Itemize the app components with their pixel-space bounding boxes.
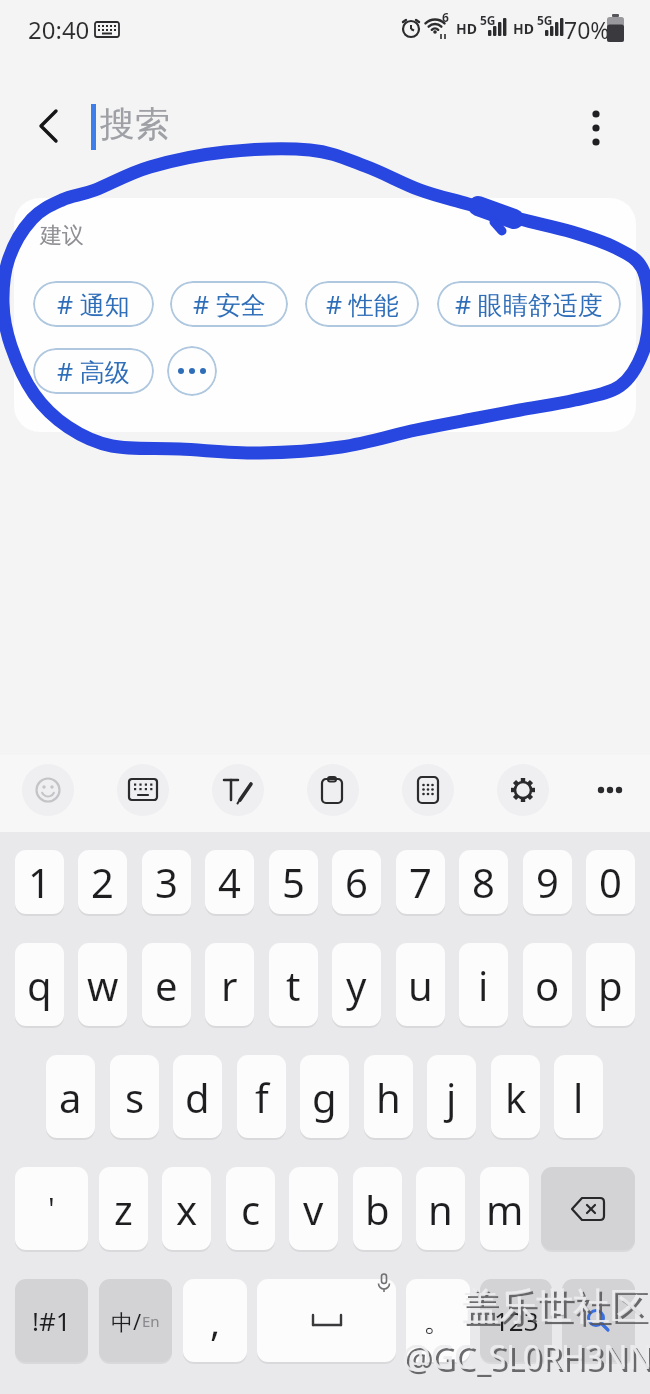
button[interactable]: 中/ [99, 1279, 172, 1362]
staticText: f [255, 1070, 269, 1124]
button[interactable]: !#1 [15, 1279, 88, 1362]
button[interactable]: 。 [406, 1279, 470, 1362]
staticText: # 安全 [193, 287, 266, 321]
staticText: o [535, 958, 560, 1012]
button[interactable]: u [396, 943, 445, 1026]
button[interactable]: ' [15, 1167, 88, 1250]
button[interactable]: j [427, 1055, 476, 1138]
button[interactable] [26, 102, 72, 148]
staticText: HD [456, 19, 477, 38]
staticText: 。 [423, 1302, 453, 1340]
button[interactable]: i [459, 943, 508, 1026]
button[interactable]: r [205, 943, 254, 1026]
staticText: y [346, 958, 367, 1012]
staticText: b [365, 1182, 390, 1236]
button[interactable]: 0 [586, 850, 635, 914]
staticText: e [155, 958, 178, 1012]
button[interactable]: 7 [396, 850, 445, 914]
button[interactable]: d [173, 1055, 222, 1138]
button[interactable]: 8 [459, 850, 508, 914]
staticText: 3 [155, 855, 178, 909]
staticText: 0 [599, 855, 622, 909]
button[interactable]: y [332, 943, 381, 1026]
button[interactable]: , [183, 1279, 247, 1362]
button[interactable]: e [142, 943, 191, 1026]
staticText: a [59, 1070, 82, 1124]
button[interactable]: o [523, 943, 572, 1026]
staticText: 8 [472, 855, 495, 909]
staticText: p [598, 958, 623, 1012]
button[interactable]: b [353, 1167, 402, 1250]
staticText: i [478, 958, 489, 1012]
button[interactable]: c [226, 1167, 275, 1250]
button[interactable]: x [162, 1167, 211, 1250]
button[interactable]: # 高级 [33, 348, 154, 394]
staticText: # 高级 [57, 354, 130, 388]
staticText: 盖乐世社区 [462, 1283, 647, 1330]
button[interactable]: t [269, 943, 318, 1026]
staticText: 5 [282, 855, 305, 909]
button[interactable] [117, 764, 169, 816]
staticText: l [573, 1070, 584, 1124]
button[interactable]: l [554, 1055, 603, 1138]
staticText: HD [513, 19, 534, 38]
button[interactable]: 1 [15, 850, 64, 914]
button[interactable]: m [480, 1167, 529, 1250]
button[interactable]: w [78, 943, 127, 1026]
staticText: 6 [442, 9, 449, 25]
button[interactable]: a [46, 1055, 95, 1138]
button[interactable] [257, 1279, 396, 1362]
button[interactable]: # 通知 [33, 281, 154, 327]
staticText: 123 [494, 1303, 539, 1338]
button[interactable]: q [15, 943, 64, 1026]
staticText: 7 [409, 855, 432, 909]
staticText: , [210, 1295, 221, 1347]
staticText: k [505, 1070, 527, 1124]
staticText: # 通知 [57, 287, 130, 321]
button[interactable] [588, 772, 632, 808]
button[interactable]: k [491, 1055, 540, 1138]
button[interactable] [562, 1279, 635, 1362]
staticText: 9 [536, 855, 559, 909]
button[interactable]: # 眼睛舒适度 [437, 281, 621, 327]
button[interactable]: 4 [205, 850, 254, 914]
button[interactable]: 6 [332, 850, 381, 914]
button[interactable]: z [99, 1167, 148, 1250]
button[interactable]: h [364, 1055, 413, 1138]
button[interactable]: n [416, 1167, 465, 1250]
staticText: En [142, 1311, 160, 1331]
button[interactable] [541, 1167, 635, 1250]
button[interactable] [307, 764, 359, 816]
button[interactable]: 9 [523, 850, 572, 914]
staticText: g [312, 1070, 337, 1124]
staticText: z [114, 1182, 133, 1236]
button[interactable] [574, 102, 618, 148]
button[interactable]: 3 [142, 850, 191, 914]
button[interactable] [167, 346, 217, 396]
staticText: 4 [218, 855, 241, 909]
staticText: n [428, 1182, 453, 1236]
button[interactable]: f [237, 1055, 286, 1138]
staticText: c [241, 1182, 261, 1236]
staticText: x [176, 1182, 198, 1236]
staticText: # 眼睛舒适度 [455, 287, 603, 321]
button[interactable] [22, 764, 74, 816]
staticText: 搜索 [100, 102, 170, 146]
button[interactable]: v [289, 1167, 338, 1250]
button[interactable]: s [110, 1055, 159, 1138]
button[interactable] [497, 764, 549, 816]
button[interactable] [212, 764, 264, 816]
button[interactable]: # 性能 [305, 281, 419, 327]
button[interactable]: g [300, 1055, 349, 1138]
button[interactable]: 123 [480, 1279, 552, 1362]
button[interactable] [402, 764, 454, 816]
staticText: 建议 [40, 222, 84, 250]
staticText: 1 [28, 855, 51, 909]
button[interactable]: 5 [269, 850, 318, 914]
staticText: 6 [345, 855, 368, 909]
button[interactable]: p [586, 943, 635, 1026]
staticText: 5G [480, 12, 496, 28]
button[interactable]: # 安全 [170, 281, 288, 327]
button[interactable]: 2 [78, 850, 127, 914]
staticText: ' [48, 1188, 55, 1229]
